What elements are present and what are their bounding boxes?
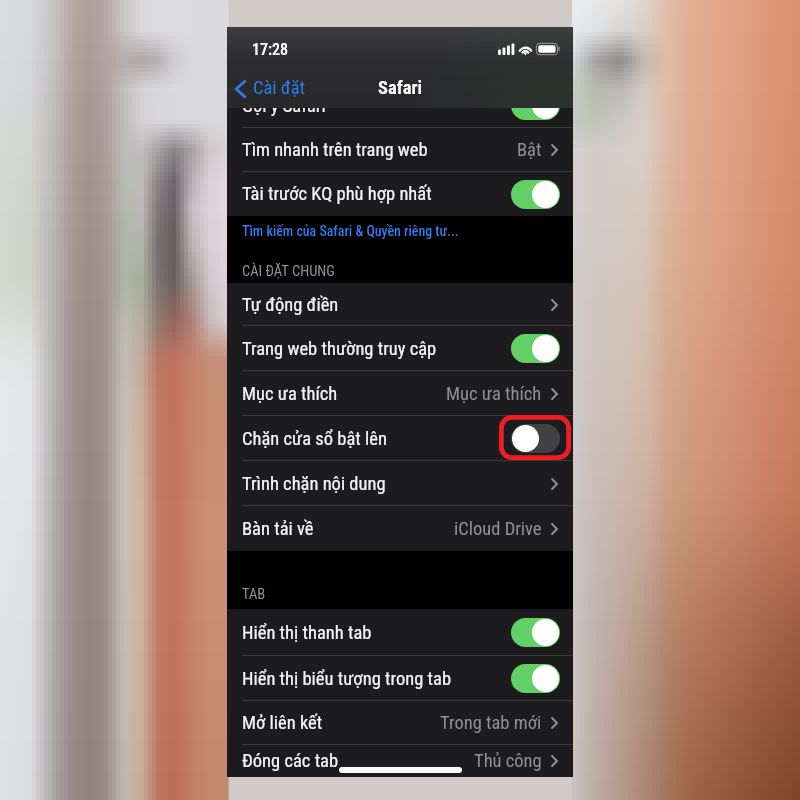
button[interactable]: Cài đặt xyxy=(229,72,307,104)
button[interactable]: Switch on xyxy=(511,664,560,693)
button[interactable]: Tự động điền xyxy=(227,283,573,326)
button[interactable]: Mục ưa thích xyxy=(227,371,573,416)
staticText: Gợi ý Safari xyxy=(242,95,326,117)
button[interactable]: Switch on xyxy=(511,91,560,120)
staticText: Safari xyxy=(378,77,422,99)
button[interactable]: Tìm nhanh trên trang web xyxy=(227,128,573,172)
button[interactable]: Chặn cửa sổ bật lên xyxy=(227,416,573,461)
staticText: Trang web thường truy cập xyxy=(242,338,437,360)
staticText: Thủ công xyxy=(474,750,542,772)
staticText: CÀI ĐẶT CHUNG xyxy=(242,263,335,280)
button[interactable]: Bàn tải về xyxy=(227,506,573,551)
button[interactable]: Đóng các tab xyxy=(227,745,573,777)
button[interactable]: Gợi ý Safari xyxy=(227,83,573,128)
staticText: Hiển thị biểu tượng trong tab xyxy=(242,668,452,690)
staticText: Đóng các tab xyxy=(242,750,339,772)
staticText: Tự động điền xyxy=(242,294,339,316)
button[interactable]: Tìm kiếm của Safari & Quyền riêng tư... xyxy=(242,223,459,239)
staticText: Hiển thị thanh tab xyxy=(242,622,372,644)
button[interactable]: Switch on xyxy=(511,334,560,363)
button[interactable]: Trình chặn nội dung xyxy=(227,461,573,506)
staticText: Chặn cửa sổ bật lên xyxy=(242,428,387,450)
staticText: iCloud Drive xyxy=(454,518,542,540)
button[interactable]: Hiển thị thanh tab xyxy=(227,609,573,656)
button[interactable]: Mở liên kết xyxy=(227,701,573,745)
button[interactable]: Trang web thường truy cập xyxy=(227,326,573,371)
staticText: Tài trước KQ phù hợp nhất xyxy=(242,183,432,205)
staticText: Tìm nhanh trên trang web xyxy=(242,139,428,161)
staticText: Mục ưa thích xyxy=(242,383,338,405)
staticText: 17:28 xyxy=(252,40,289,59)
staticText: Trong tab mới xyxy=(440,712,542,734)
button[interactable]: Switch on xyxy=(511,180,560,209)
staticText: Mở liên kết xyxy=(242,712,323,734)
staticText: Mục ưa thích xyxy=(446,383,542,405)
staticText: Trình chặn nội dung xyxy=(242,473,386,495)
staticText: Bật xyxy=(517,139,542,161)
staticText: Bàn tải về xyxy=(242,518,314,540)
button[interactable]: Switch off xyxy=(511,424,560,453)
button[interactable]: Hiển thị biểu tượng trong tab xyxy=(227,656,573,701)
button[interactable]: Tài trước KQ phù hợp nhất xyxy=(227,172,573,216)
staticText: Cài đặt xyxy=(253,77,305,99)
button[interactable]: Switch on xyxy=(511,618,560,647)
staticText: TAB xyxy=(242,586,266,603)
